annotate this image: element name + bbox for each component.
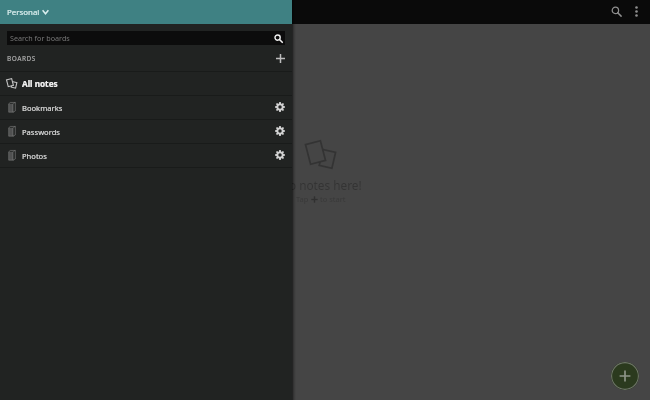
- button[interactable]: Board settings: [270, 147, 288, 165]
- button[interactable]: Search: [603, 1, 625, 23]
- button[interactable]: All notes: [0, 72, 292, 95]
- button[interactable]: Add board: [272, 50, 288, 66]
- staticText: No notes here!: [280, 177, 362, 193]
- button[interactable]: More options: [625, 1, 647, 23]
- button[interactable]: Board settings: [270, 99, 288, 117]
- staticText: Passwords: [22, 127, 60, 137]
- button[interactable]: Personal: [0, 0, 292, 24]
- staticText: Bookmarks: [22, 103, 63, 113]
- staticText: Personal: [7, 7, 40, 18]
- button[interactable]: Bookmarks: [0, 96, 292, 119]
- button[interactable]: Add note: [611, 362, 639, 390]
- staticText: BOARDS: [7, 54, 36, 63]
- staticText: Photos: [22, 151, 47, 161]
- button[interactable]: Board settings: [270, 123, 288, 141]
- button[interactable]: Passwords: [0, 120, 292, 143]
- staticText: Search for boards: [10, 33, 70, 43]
- staticText: Tap: [296, 194, 309, 204]
- staticText: to start: [320, 194, 346, 204]
- staticText: All notes: [22, 78, 58, 89]
- button[interactable]: Photos: [0, 144, 292, 167]
- button[interactable]: Search for boards: [7, 31, 285, 45]
